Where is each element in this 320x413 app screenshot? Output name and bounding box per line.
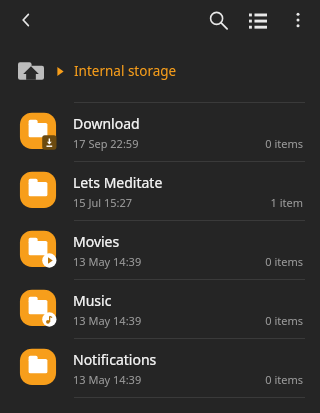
button[interactable]: Back — [6, 0, 46, 40]
staticText: 17 Sep 22:59 — [73, 136, 139, 151]
button[interactable]: List view — [238, 0, 278, 40]
button[interactable]: Movies — [0, 221, 320, 279]
staticText: Internal storage — [74, 62, 177, 80]
button[interactable]: Search — [198, 0, 238, 40]
staticText: Music — [73, 291, 112, 310]
staticText: Download — [73, 114, 140, 133]
staticText: 0 items — [142, 254, 303, 269]
button[interactable]: Internal storage — [0, 40, 320, 102]
staticText: 0 items — [142, 372, 303, 387]
staticText: 15 Jul 15:27 — [73, 195, 133, 210]
button[interactable]: More options — [278, 0, 318, 40]
button[interactable]: Notifications — [0, 339, 320, 397]
staticText: Movies — [73, 232, 120, 251]
staticText: 13 May 14:39 — [73, 313, 142, 328]
staticText: Notifications — [73, 350, 157, 369]
button[interactable]: Music — [0, 280, 320, 338]
button[interactable]: Lets Meditate — [0, 162, 320, 220]
button[interactable]: Download — [0, 103, 320, 161]
staticText: 1 item — [133, 195, 303, 210]
staticText: 0 items — [139, 136, 303, 151]
staticText: 13 May 14:39 — [73, 254, 142, 269]
staticText: 13 May 14:39 — [73, 372, 142, 387]
staticText: 0 items — [142, 313, 303, 328]
staticText: Lets Meditate — [73, 173, 163, 192]
